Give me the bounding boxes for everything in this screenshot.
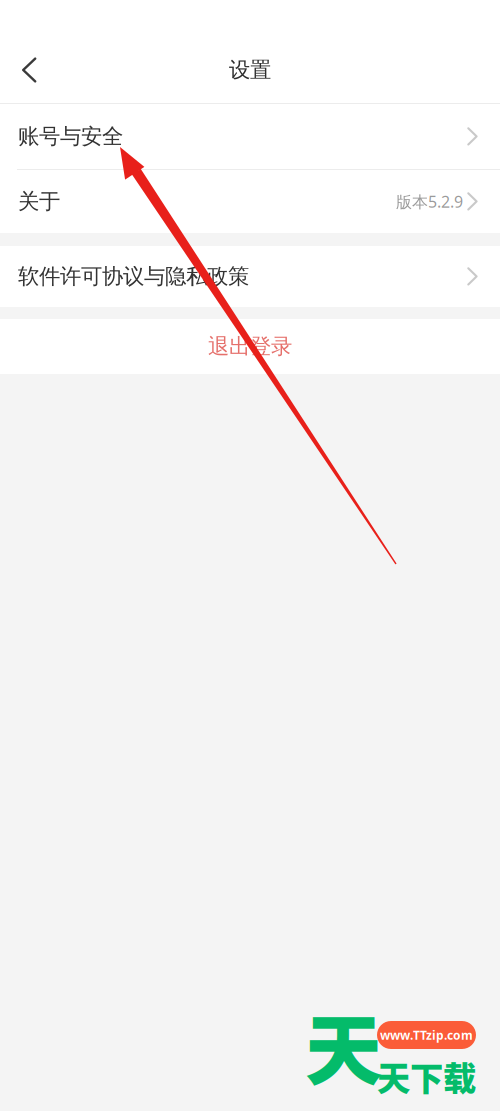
staticText: 天下载 [377, 1052, 476, 1100]
button[interactable]: 关于 [0, 170, 500, 233]
staticText: www.TTzip.com [380, 1027, 473, 1043]
button[interactable]: Back [0, 43, 57, 97]
staticText: 退出登录 [208, 333, 292, 360]
staticText: 天 [305, 989, 382, 1101]
staticText: 关于 [18, 188, 60, 215]
staticText: 设置 [229, 57, 271, 83]
button[interactable]: 账号与安全 [0, 104, 500, 169]
button[interactable]: 退出登录 [0, 319, 500, 374]
staticText: 账号与安全 [18, 123, 123, 150]
staticText: 版本5.2.9 [396, 191, 463, 212]
button[interactable]: 软件许可协议与隐私政策 [0, 246, 500, 307]
staticText: 软件许可协议与隐私政策 [18, 263, 249, 290]
